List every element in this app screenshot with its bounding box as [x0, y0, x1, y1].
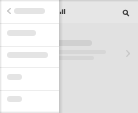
- button[interactable]: [0, 23, 59, 46]
- button[interactable]: [0, 46, 59, 67]
- button[interactable]: Statistics: [59, 9, 66, 14]
- button[interactable]: [0, 67, 59, 90]
- button[interactable]: [0, 90, 59, 113]
- button[interactable]: Open details: [122, 48, 133, 59]
- button[interactable]: Back: [4, 6, 14, 16]
- button[interactable]: Search: [120, 7, 131, 18]
